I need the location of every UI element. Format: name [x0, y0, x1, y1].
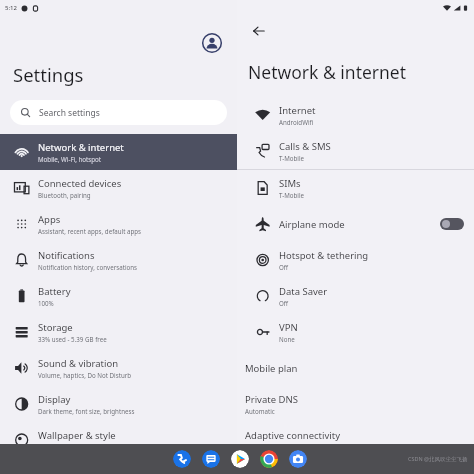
staticText: CSDN @北风吹尘尘飞扬 [408, 455, 468, 463]
button[interactable]: Apps [0, 206, 237, 242]
button[interactable]: Connected devices [0, 170, 237, 206]
button[interactable]: Hotspot & tethering [237, 242, 474, 278]
staticText: VPN [279, 321, 298, 334]
button[interactable]: Notifications [0, 242, 237, 278]
button[interactable]: Internet [237, 97, 474, 133]
button[interactable]: Calls & SMS [237, 133, 474, 169]
button[interactable]: Airplane mode [237, 206, 474, 242]
staticText: T-Mobile [279, 154, 305, 162]
staticText: Connected devices [38, 177, 122, 190]
staticText: Wallpaper & style [38, 429, 116, 442]
staticText: Data Saver [279, 285, 328, 298]
button[interactable]: VPN [237, 314, 474, 350]
button[interactable]: Private DNS [237, 386, 474, 422]
staticText: Mobile, Wi-Fi, hotspot [38, 155, 102, 163]
staticText: AndroidWifi [279, 118, 314, 126]
button[interactable]: Mobile plan [237, 350, 474, 386]
button[interactable]: Sound & vibration [0, 350, 237, 386]
staticText: Calls & SMS [279, 140, 331, 153]
button[interactable]: Account [201, 32, 223, 54]
staticText: 33% used - 5.39 GB free [38, 335, 107, 343]
staticText: On [245, 443, 254, 451]
staticText: Colors, themed app icons [38, 443, 112, 451]
button[interactable]: Camera [289, 450, 307, 468]
button[interactable]: Play Store [231, 450, 249, 468]
button[interactable]: Adaptive connectivity [237, 422, 474, 458]
staticText: Battery [38, 285, 71, 298]
staticText: Search settings [39, 107, 100, 119]
staticText: Network & internet [38, 141, 124, 154]
button[interactable]: Messages [202, 450, 220, 468]
staticText: Storage [38, 321, 73, 334]
button[interactable]: Phone [173, 450, 191, 468]
button[interactable]: Network & internet [0, 134, 237, 170]
staticText: Notifications [38, 249, 95, 262]
staticText: Internet [279, 104, 316, 117]
staticText: 5:12 [5, 4, 17, 12]
button[interactable]: Back [248, 20, 270, 42]
button[interactable]: Data Saver [237, 278, 474, 314]
staticText: Notification history, conversations [38, 263, 138, 271]
staticText: Bluetooth, pairing [38, 191, 91, 199]
staticText: Automatic [245, 407, 275, 415]
staticText: Apps [38, 213, 61, 226]
button[interactable]: Storage [0, 314, 237, 350]
staticText: 100% [38, 299, 54, 307]
staticText: T-Mobile [279, 191, 305, 199]
staticText: Private DNS [245, 393, 298, 406]
staticText: Settings [13, 62, 84, 87]
button[interactable]: SIMs [237, 170, 474, 206]
staticText: Off [279, 299, 289, 307]
button[interactable]: Airplane mode toggle [440, 218, 464, 230]
staticText: Volume, haptics, Do Not Disturb [38, 371, 132, 379]
staticText: Mobile plan [245, 362, 298, 375]
staticText: Display [38, 393, 71, 406]
staticText: Sound & vibration [38, 357, 119, 370]
button[interactable]: Wallpaper & style [0, 422, 237, 458]
staticText: Airplane mode [279, 218, 345, 231]
staticText: Dark theme, font size, brightness [38, 407, 135, 415]
staticText: Network & internet [248, 60, 407, 84]
staticText: SIMs [279, 177, 301, 190]
button[interactable]: Search settings [10, 100, 227, 125]
staticText: Off [279, 263, 289, 271]
button[interactable]: Battery [0, 278, 237, 314]
staticText: Assistant, recent apps, default apps [38, 227, 142, 235]
button[interactable]: Chrome [260, 450, 278, 468]
staticText: None [279, 335, 295, 343]
staticText: Adaptive connectivity [245, 429, 341, 442]
button[interactable]: Display [0, 386, 237, 422]
staticText: Hotspot & tethering [279, 249, 369, 262]
